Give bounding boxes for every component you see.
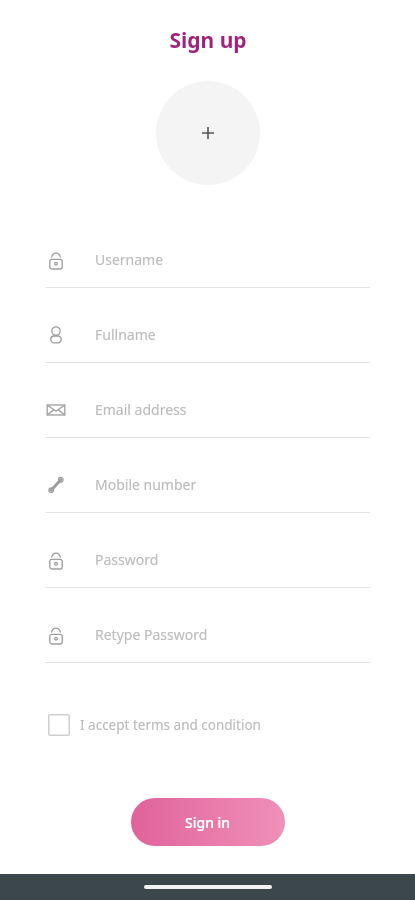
button[interactable]: Username bbox=[0, 232, 415, 307]
staticText: Password bbox=[95, 550, 159, 569]
staticText: Fullname bbox=[95, 325, 156, 344]
button[interactable]: I accept terms and condition bbox=[45, 710, 264, 740]
staticText: Sign in bbox=[185, 813, 231, 832]
button[interactable]: Retype Password bbox=[0, 607, 415, 682]
button[interactable]: Fullname bbox=[0, 307, 415, 382]
button[interactable]: Email address bbox=[0, 382, 415, 457]
button[interactable]: Add profile photo bbox=[156, 81, 260, 185]
button[interactable]: Sign in bbox=[131, 798, 285, 846]
staticText: I accept terms and condition bbox=[80, 716, 261, 734]
staticText: Email address bbox=[95, 400, 187, 419]
staticText: Username bbox=[95, 250, 164, 269]
button[interactable]: Mobile number bbox=[0, 457, 415, 532]
button[interactable]: Password bbox=[0, 532, 415, 607]
staticText: Sign up bbox=[169, 26, 247, 55]
staticText: Retype Password bbox=[95, 625, 208, 644]
staticText: Mobile number bbox=[95, 475, 197, 494]
